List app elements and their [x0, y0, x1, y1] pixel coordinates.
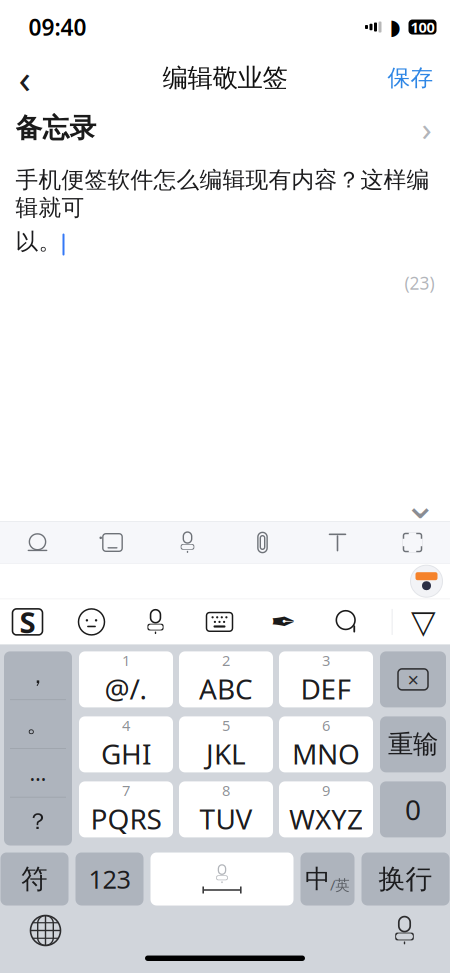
staticText: …: [29, 759, 46, 787]
button[interactable]: 中英文切换: [300, 852, 354, 905]
staticText: 1: [122, 651, 130, 670]
staticText: 6: [322, 716, 330, 735]
staticText: 4: [122, 716, 130, 735]
staticText: S: [19, 602, 35, 641]
staticText: 。: [26, 710, 49, 738]
button[interactable]: 5: [179, 716, 273, 772]
button[interactable]: ，: [4, 651, 72, 699]
staticText: (23): [404, 271, 434, 294]
button[interactable]: 1: [79, 651, 173, 707]
button[interactable]: 6: [279, 716, 373, 772]
staticText: 5: [222, 716, 230, 735]
button[interactable]: 换行: [361, 852, 449, 905]
button[interactable]: 收起键盘: [392, 600, 450, 644]
staticText: 09:40: [28, 12, 86, 42]
button[interactable]: 重输: [380, 716, 446, 772]
staticText: 123: [88, 862, 130, 896]
button[interactable]: 返回: [2, 56, 46, 100]
staticText: 100: [410, 17, 434, 37]
staticText: @/.: [104, 670, 147, 707]
button[interactable]: 123: [75, 852, 143, 905]
button[interactable]: 助手: [404, 564, 448, 598]
button[interactable]: 0: [380, 781, 446, 837]
button[interactable]: 文本格式: [300, 522, 375, 563]
staticText: PQRS: [90, 800, 161, 837]
button[interactable]: 搜索: [315, 600, 379, 644]
staticText: 0: [405, 791, 421, 828]
staticText: 9: [322, 781, 330, 800]
staticText: /英: [330, 875, 350, 895]
button[interactable]: 。: [4, 700, 72, 748]
button[interactable]: 录音: [150, 522, 225, 563]
staticText: 3: [322, 651, 330, 670]
button[interactable]: ？: [4, 797, 72, 845]
button[interactable]: 符: [0, 852, 68, 905]
staticText: 保存: [387, 64, 433, 92]
button[interactable]: 听写: [374, 908, 434, 952]
staticText: ◗: [389, 15, 400, 39]
staticText: 换行: [378, 863, 432, 895]
button[interactable]: 全屏: [375, 522, 450, 563]
staticText: 中: [305, 863, 330, 894]
staticText: 以。: [15, 228, 61, 255]
staticText: ABC: [199, 670, 253, 707]
staticText: 2: [222, 651, 230, 670]
button[interactable]: 8: [179, 781, 273, 837]
button[interactable]: 图片: [75, 522, 150, 563]
button[interactable]: 空格: [150, 852, 293, 905]
button[interactable]: 手写: [251, 600, 315, 644]
staticText: ▽: [411, 604, 436, 640]
staticText: 编辑敬业签: [162, 62, 287, 93]
staticText: MNO: [292, 735, 360, 772]
button[interactable]: 切换键盘: [15, 908, 75, 952]
staticText: GHI: [101, 735, 151, 772]
button[interactable]: 备忘录: [0, 102, 450, 154]
button[interactable]: 收起: [398, 487, 442, 521]
button[interactable]: 搜狗输入法: [0, 600, 59, 644]
staticText: DEF: [300, 670, 351, 707]
button[interactable]: 7: [79, 781, 173, 837]
staticText: 重输: [388, 729, 438, 760]
staticText: 手机便签软件怎么编辑现有内容？这样编辑就可: [15, 166, 429, 222]
staticText: ×: [407, 666, 418, 693]
staticText: 备忘录: [15, 112, 96, 144]
button[interactable]: 9: [279, 781, 373, 837]
button[interactable]: 提醒: [0, 522, 75, 563]
button[interactable]: 2: [179, 651, 273, 707]
button[interactable]: 语音输入: [123, 600, 187, 644]
staticText: ›: [421, 106, 431, 150]
button[interactable]: 3: [279, 651, 373, 707]
button[interactable]: …: [4, 749, 72, 797]
staticText: ，: [26, 661, 49, 689]
button[interactable]: 键盘切换: [187, 600, 251, 644]
staticText: TUV: [199, 800, 252, 837]
staticText: ✒: [270, 604, 296, 639]
button[interactable]: 保存: [373, 56, 447, 100]
staticText: 8: [222, 781, 230, 800]
staticText: ⌄: [403, 482, 437, 527]
staticText: ‹: [18, 51, 30, 104]
button[interactable]: 删除: [380, 651, 446, 707]
staticText: WXYZ: [289, 800, 363, 837]
staticText: 符: [21, 863, 48, 895]
staticText: JKL: [206, 735, 246, 772]
button[interactable]: 4: [79, 716, 173, 772]
staticText: ？: [26, 808, 49, 835]
button[interactable]: 表情: [59, 600, 123, 644]
button[interactable]: 附件: [225, 522, 300, 563]
staticText: 7: [122, 781, 130, 800]
